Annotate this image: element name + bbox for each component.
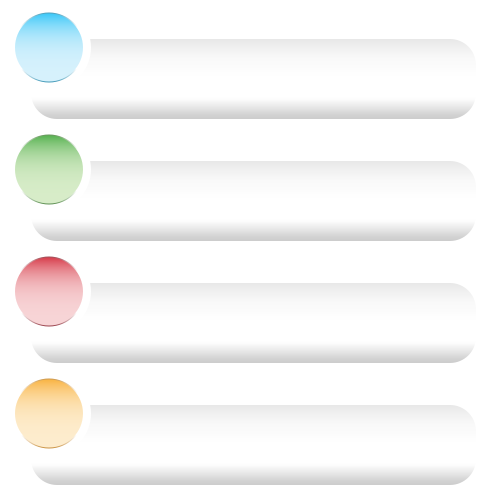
button[interactable]: Orange <box>7 371 91 455</box>
button[interactable]: Orange <box>31 405 476 485</box>
button[interactable]: Red <box>7 249 91 333</box>
button[interactable]: Blue <box>7 5 91 89</box>
button[interactable]: Green <box>31 161 476 241</box>
button[interactable]: Green <box>7 127 91 211</box>
button[interactable]: Blue <box>31 39 476 119</box>
button[interactable]: Red <box>31 283 476 363</box>
